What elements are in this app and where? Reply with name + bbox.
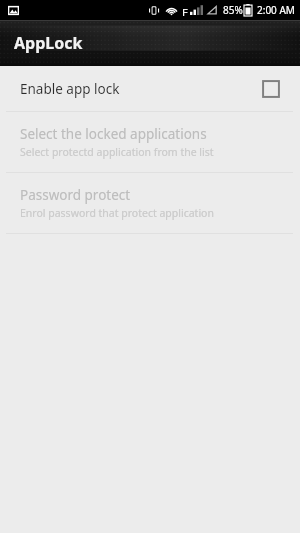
button[interactable]: Password protect xyxy=(0,173,300,233)
staticText: E xyxy=(182,5,189,16)
staticText: AppLock xyxy=(14,32,83,54)
button[interactable]: Enable app lock xyxy=(0,66,300,111)
staticText: 2:00 AM xyxy=(257,3,295,17)
staticText: Password protect xyxy=(20,186,131,204)
staticText: Enrol password that protect application xyxy=(20,206,214,220)
staticText: Enable app lock xyxy=(20,80,120,98)
staticText: Select the locked applications xyxy=(20,125,207,143)
staticText: 85% xyxy=(223,3,243,17)
button[interactable]: Enable app lock checkbox xyxy=(262,80,280,98)
button[interactable]: Select the locked applications xyxy=(0,112,300,172)
staticText: Select protectd application from the lis… xyxy=(20,145,214,159)
